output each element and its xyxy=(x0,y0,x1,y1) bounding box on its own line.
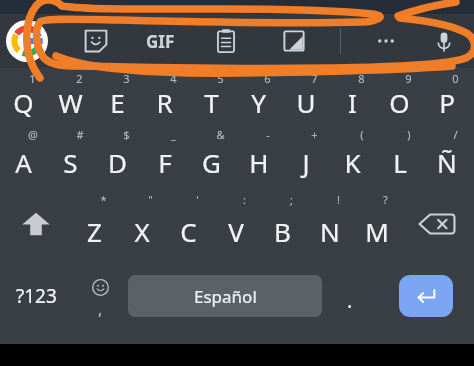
staticText: . xyxy=(347,287,353,314)
staticText: - xyxy=(266,127,270,142)
button[interactable]: Shift xyxy=(0,188,71,260)
button[interactable]: More options xyxy=(364,19,408,63)
staticText: 9 xyxy=(405,71,412,86)
button[interactable]: ' xyxy=(165,188,212,260)
staticText: # xyxy=(76,127,84,142)
button[interactable]: # xyxy=(47,124,94,188)
staticText: ) xyxy=(407,127,411,142)
staticText: @ xyxy=(28,127,38,142)
staticText: M xyxy=(365,214,389,249)
staticText: J xyxy=(302,145,310,180)
button[interactable]: 1 xyxy=(0,68,47,124)
staticText: I xyxy=(348,85,357,120)
button[interactable]: 8 xyxy=(329,68,376,124)
button[interactable]: 6 xyxy=(235,68,282,124)
button[interactable]: _ xyxy=(141,124,188,188)
staticText: / xyxy=(453,127,458,142)
staticText: S xyxy=(63,145,78,180)
staticText: 4 xyxy=(170,71,177,86)
button[interactable]: $ xyxy=(94,124,141,188)
staticText: U xyxy=(296,85,316,120)
staticText: 2 xyxy=(76,71,83,86)
staticText: N xyxy=(320,214,340,249)
button[interactable]: " xyxy=(118,188,165,260)
staticText: Q xyxy=(13,85,34,120)
button[interactable]: 9 xyxy=(376,68,423,124)
button[interactable]: : xyxy=(212,188,259,260)
button[interactable]: Backspace xyxy=(400,188,474,260)
staticText: 6 xyxy=(264,71,271,86)
button[interactable]: / xyxy=(423,124,470,188)
button[interactable]: ( xyxy=(329,124,376,188)
button[interactable]: & xyxy=(188,124,235,188)
staticText: " xyxy=(148,192,153,207)
button[interactable]: + xyxy=(282,124,329,188)
button[interactable]: Clipboard xyxy=(204,19,248,63)
staticText: V xyxy=(228,214,244,249)
button[interactable]: - xyxy=(235,124,282,188)
button[interactable]: 4 xyxy=(141,68,188,124)
staticText: 1 xyxy=(29,71,36,86)
staticText: O xyxy=(389,85,410,120)
staticText: W xyxy=(58,85,83,120)
staticText: C xyxy=(180,214,197,249)
button[interactable]: Enter xyxy=(399,275,453,317)
button[interactable]: ; xyxy=(259,188,306,260)
button[interactable]: * xyxy=(71,188,118,260)
button[interactable]: GIF xyxy=(136,17,184,65)
button[interactable]: Stickers xyxy=(74,19,118,63)
button[interactable]: 7 xyxy=(282,68,329,124)
staticText: 7 xyxy=(311,71,318,86)
staticText: ? xyxy=(383,192,388,207)
staticText: : xyxy=(243,192,246,207)
staticText: 5 xyxy=(217,71,224,86)
staticText: ! xyxy=(337,192,340,207)
button[interactable]: ! xyxy=(306,188,353,260)
button[interactable]: 2 xyxy=(47,68,94,124)
button[interactable]: Voice input xyxy=(422,19,466,63)
button[interactable]: ? xyxy=(353,188,400,260)
staticText: L xyxy=(393,145,407,180)
button[interactable]: Español xyxy=(128,275,322,317)
staticText: Español xyxy=(194,285,257,308)
staticText: P xyxy=(439,85,455,120)
staticText: A xyxy=(15,145,32,180)
button[interactable]: ) xyxy=(376,124,423,188)
staticText: Ñ xyxy=(437,145,457,180)
staticText: , xyxy=(98,298,103,320)
staticText: ' xyxy=(196,192,199,207)
staticText: K xyxy=(344,145,361,180)
staticText: ( xyxy=(360,127,364,142)
staticText: _ xyxy=(171,127,176,142)
staticText: * xyxy=(100,192,107,207)
staticText: X xyxy=(134,214,150,249)
button[interactable]: Translate xyxy=(272,19,316,63)
staticText: R xyxy=(156,85,173,120)
staticText: GIF xyxy=(146,30,175,53)
staticText: + xyxy=(311,127,318,142)
button[interactable]: 3 xyxy=(94,68,141,124)
button[interactable]: @ xyxy=(0,124,47,188)
staticText: 0 xyxy=(452,71,459,86)
button[interactable]: . xyxy=(322,260,377,332)
button[interactable]: 5 xyxy=(188,68,235,124)
button[interactable]: Emoji and comma xyxy=(73,260,128,332)
staticText: G xyxy=(202,145,221,180)
staticText: & xyxy=(216,127,225,142)
staticText: E xyxy=(110,85,125,120)
button[interactable]: ?123 xyxy=(0,260,73,332)
staticText: H xyxy=(249,145,269,180)
button[interactable]: Google search xyxy=(6,20,48,62)
button[interactable]: 0 xyxy=(423,68,470,124)
staticText: ?123 xyxy=(16,283,57,309)
staticText: D xyxy=(108,145,127,180)
staticText: $ xyxy=(123,127,130,142)
staticText: Y xyxy=(251,85,266,120)
staticText: Z xyxy=(87,214,102,249)
staticText: ; xyxy=(290,192,293,207)
staticText: 8 xyxy=(358,71,365,86)
staticText: T xyxy=(204,85,219,120)
staticText: B xyxy=(274,214,291,249)
staticText: F xyxy=(158,145,172,180)
staticText: 3 xyxy=(123,71,130,86)
